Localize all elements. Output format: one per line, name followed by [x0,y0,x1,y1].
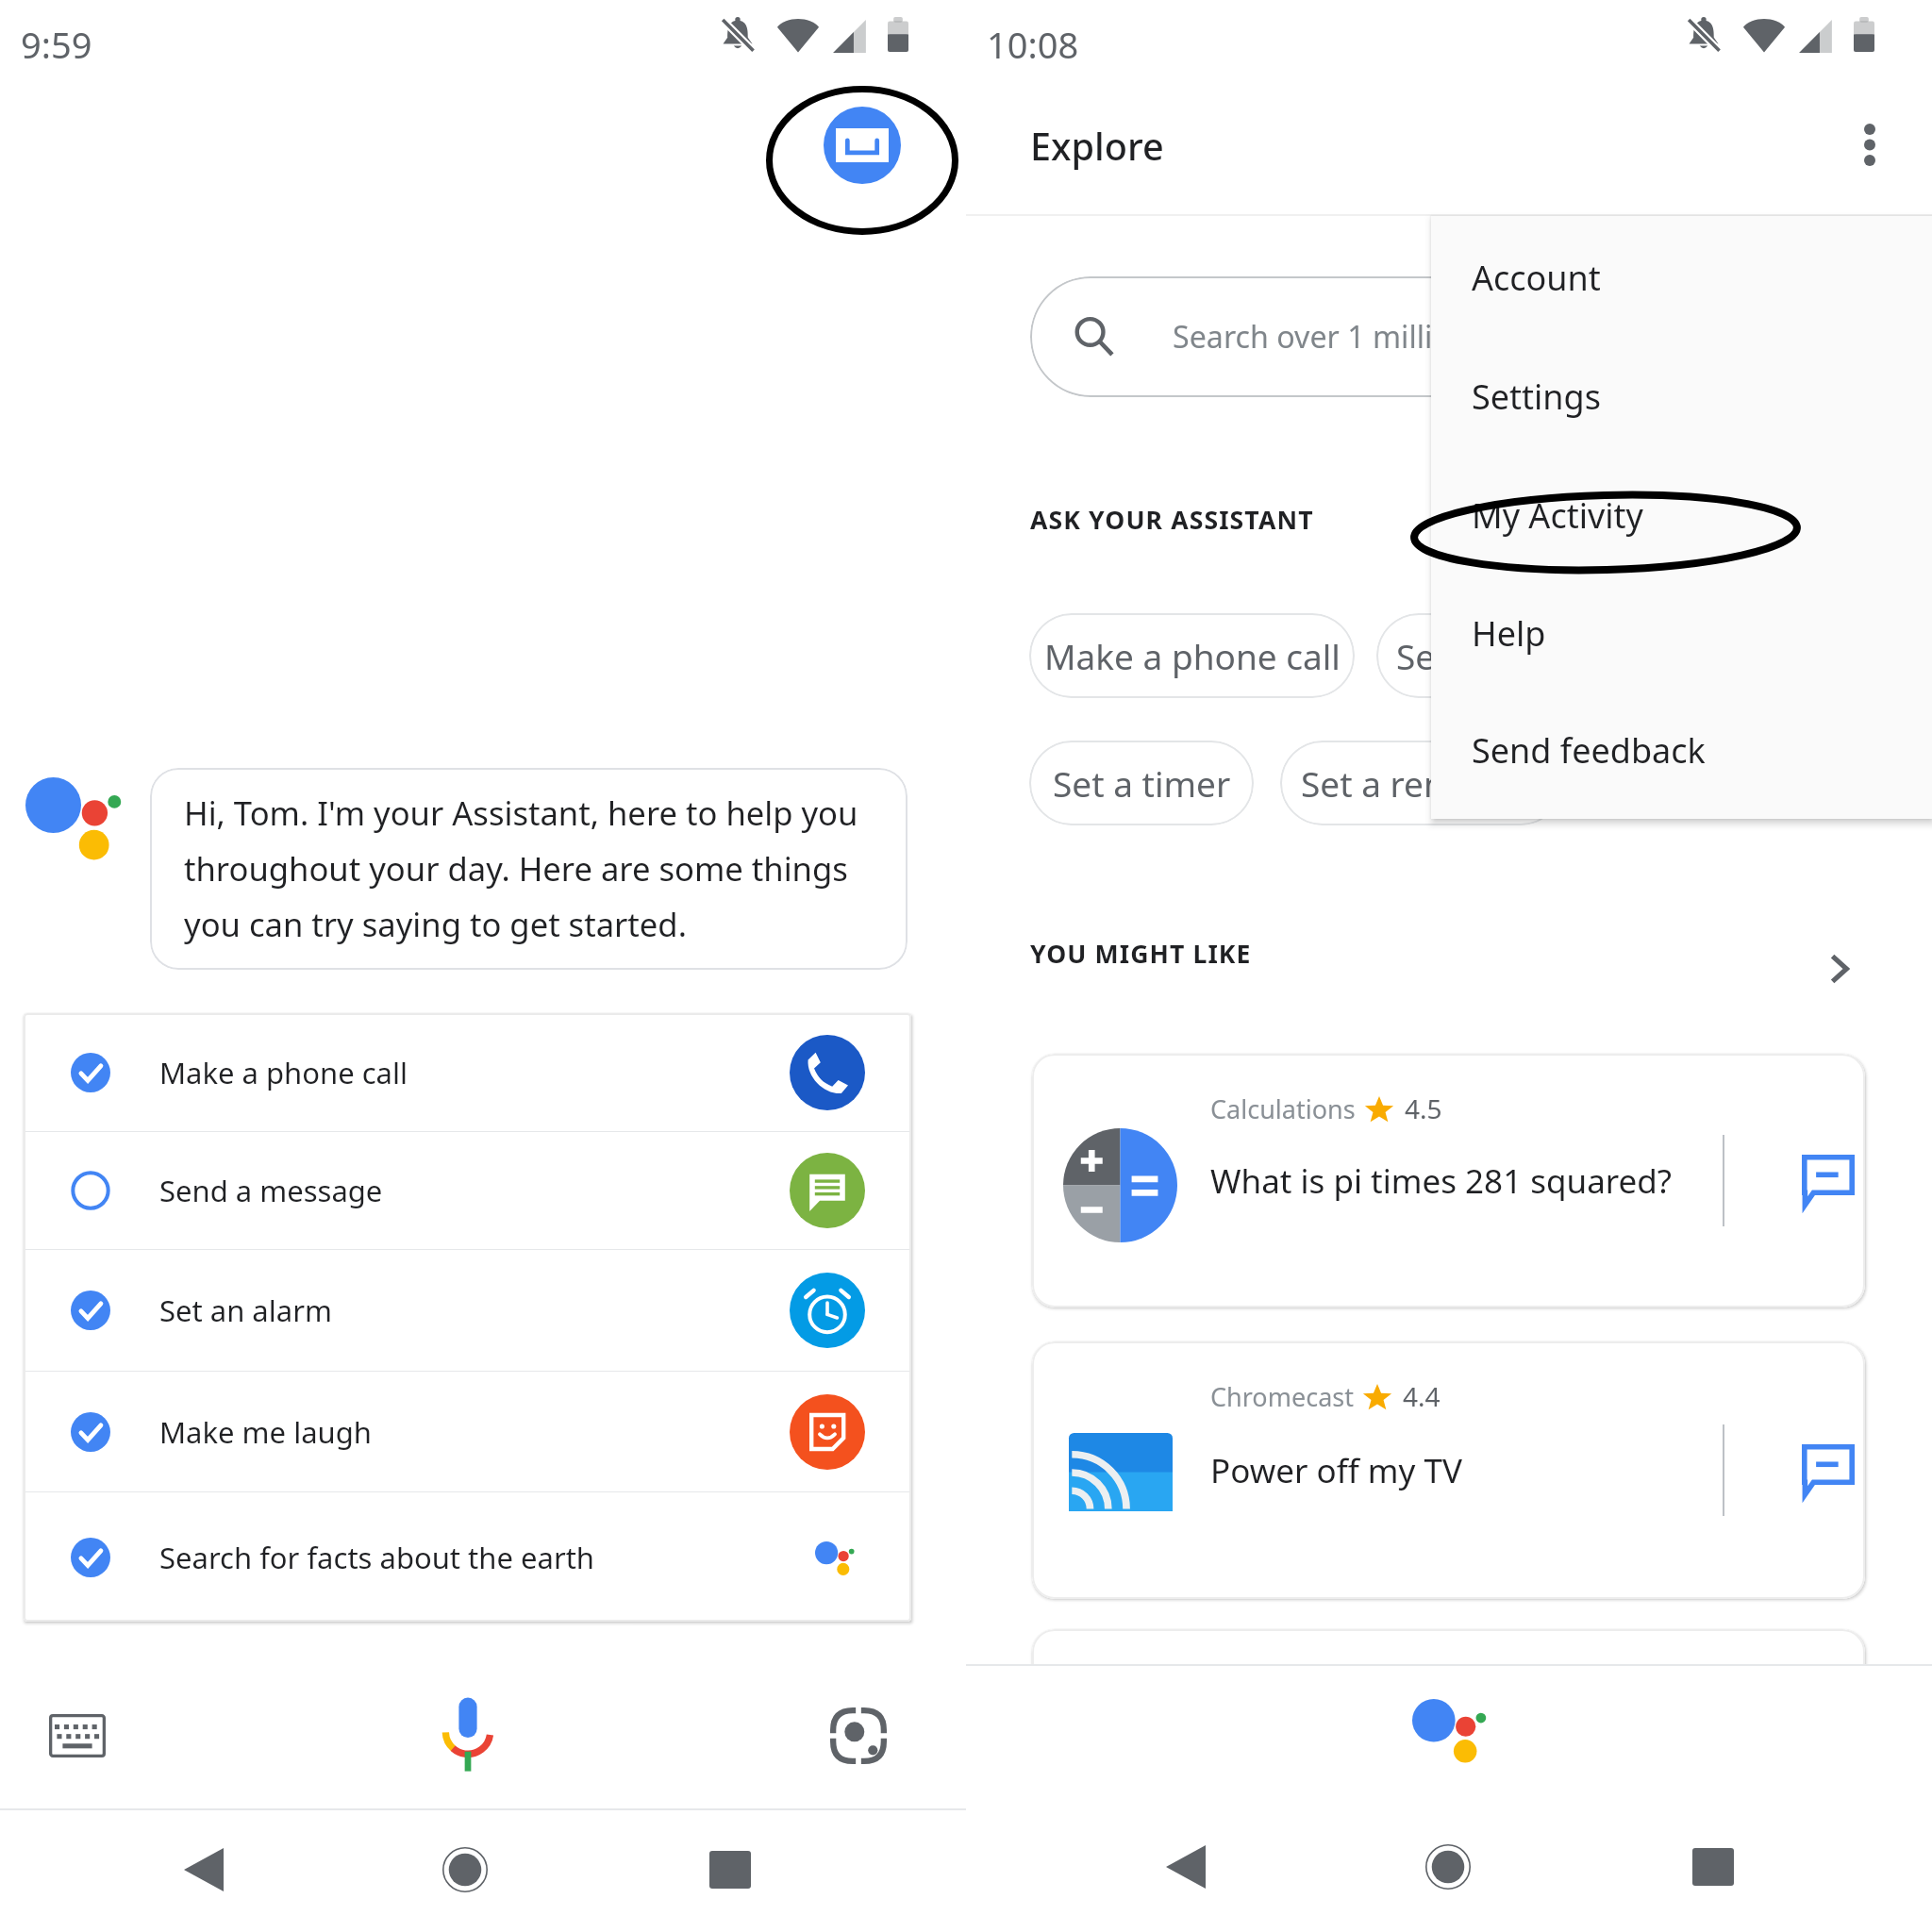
staticText: ASK YOUR ASSISTANT [1030,503,1314,537]
button[interactable]: Set an alarm [24,1250,911,1371]
staticText: My Activity [1472,492,1643,539]
button[interactable]: Settings [1431,337,1932,456]
button[interactable]: Account [1431,218,1932,337]
staticText: Explore [1030,121,1164,172]
button[interactable]: Assistant [1412,1699,1482,1763]
staticText: YOU MIGHT LIKE [1030,937,1252,971]
staticText: 9:59 [21,20,92,69]
staticText: Hi, Tom. I'm your Assistant, here to hel… [184,791,874,946]
button[interactable]: Search over 1 million [1030,276,1870,397]
staticText: Help [1472,610,1546,657]
staticText: Settings [1472,374,1601,420]
button[interactable]: Ask assistant [1787,1341,1865,1599]
button[interactable]: Make a phone call [1029,613,1355,698]
staticText: Calculations [1210,1091,1356,1126]
button[interactable]: Google Lens [813,1690,904,1781]
staticText: Account [1472,255,1601,301]
staticText: Chromecast [1210,1379,1354,1414]
button[interactable]: Set a timer [1029,741,1254,825]
staticText: Search over 1 million [1173,316,1470,358]
button[interactable]: Keyboard [32,1690,123,1781]
staticText: 4.5 [1405,1091,1442,1126]
staticText: What is pi times 281 squared? [1210,1158,1673,1204]
button[interactable]: My Activity [1431,456,1932,575]
staticText: 10:08 [987,20,1079,69]
staticText: Send a message [1396,632,1663,679]
button[interactable]: Make a phone call [24,1013,911,1131]
button[interactable]: Calculations [1032,1054,1865,1307]
button[interactable]: Send a message [1376,613,1682,698]
staticText: Power off my TV [1210,1448,1462,1493]
staticText: Set a timer [1053,759,1231,807]
button[interactable]: Back [1144,1825,1227,1908]
staticText: Set an alarm [159,1291,332,1330]
staticText: Send a message [159,1171,383,1210]
staticText: Set a reminder [1301,759,1542,807]
staticText: Send feedback [1472,727,1706,774]
button[interactable]: Ask assistant [1787,1054,1865,1307]
button[interactable]: More options [1828,103,1911,186]
button[interactable]: Send feedback [1431,691,1932,809]
button[interactable]: Set a reminder [1280,741,1563,825]
staticText: Make a phone call [1044,632,1341,679]
button[interactable]: Inbox [824,107,901,184]
staticText: Make a phone call [159,1053,408,1092]
button[interactable]: Home [1407,1825,1490,1908]
staticText: Make me laugh [159,1412,372,1452]
button[interactable]: Send a message [24,1132,911,1249]
button[interactable]: Help [1431,574,1932,692]
button[interactable]: Recents [1672,1825,1755,1908]
button[interactable]: Home [424,1828,507,1911]
button[interactable]: Chromecast [1032,1341,1865,1599]
staticText: Search for facts about the earth [159,1538,595,1577]
button[interactable]: See more [1802,931,1877,1007]
button[interactable]: Search for facts about the earth [24,1492,911,1622]
button[interactable]: Recents [689,1828,772,1911]
button[interactable]: Voice search [421,1687,515,1781]
staticText: 4.4 [1403,1378,1441,1414]
button[interactable]: Make me laugh [24,1372,911,1491]
button[interactable]: Back [162,1828,245,1911]
